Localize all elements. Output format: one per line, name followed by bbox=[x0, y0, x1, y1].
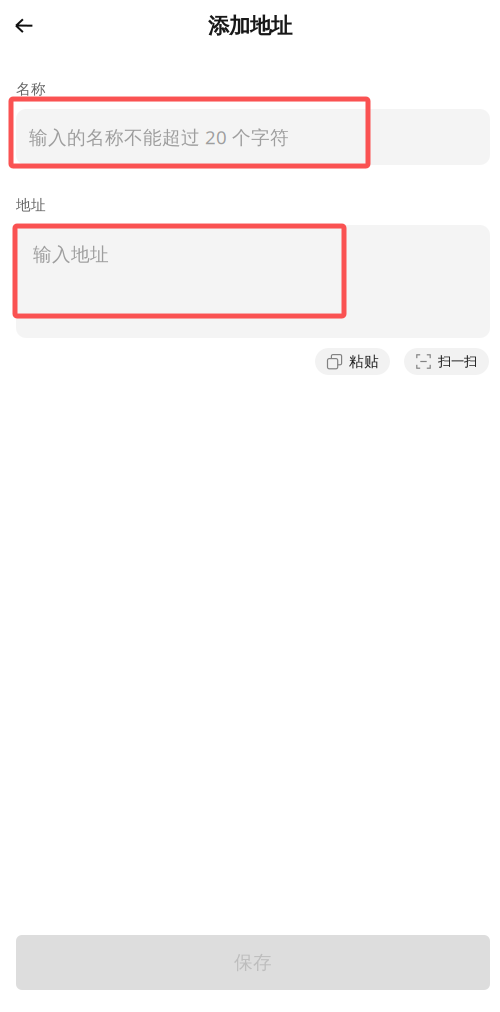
staticText: 输入地址 bbox=[33, 243, 109, 266]
button[interactable]: Back bbox=[2, 4, 46, 48]
staticText: 名称 bbox=[16, 80, 46, 98]
button[interactable]: 粘贴 bbox=[315, 348, 390, 375]
button[interactable]: 扫一扫 bbox=[404, 348, 489, 375]
button[interactable]: 输入的名称不能超过 20 个字符 bbox=[16, 109, 490, 165]
staticText: 保存 bbox=[234, 951, 272, 974]
staticText: 添加地址 bbox=[208, 13, 292, 39]
staticText: 输入的名称不能超过 20 个字符 bbox=[29, 125, 289, 149]
staticText: 扫一扫 bbox=[438, 353, 477, 370]
staticText: 粘贴 bbox=[349, 352, 379, 370]
staticText: 地址 bbox=[16, 196, 46, 214]
button[interactable]: 输入地址 bbox=[16, 225, 490, 338]
